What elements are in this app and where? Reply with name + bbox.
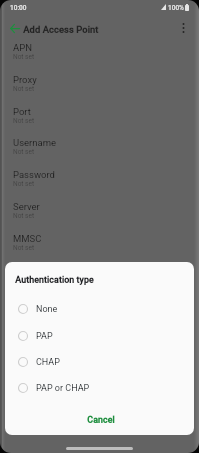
button[interactable]: Port: [0, 102, 199, 133]
staticText: 10:00: [10, 4, 27, 12]
staticText: Username: [13, 137, 57, 148]
button[interactable]: Navigate up: [5, 18, 25, 38]
staticText: Not set: [13, 244, 35, 252]
staticText: Proxy: [13, 74, 37, 85]
button[interactable]: More options: [173, 18, 193, 38]
button[interactable]: MMS proxy: [0, 260, 199, 291]
staticText: Not set: [13, 148, 35, 156]
staticText: Not set: [13, 212, 35, 220]
button[interactable]: MMSC: [0, 229, 199, 260]
button[interactable]: Cancel: [78, 410, 124, 430]
staticText: CHAP: [36, 357, 60, 368]
button[interactable]: Username: [0, 133, 199, 164]
staticText: Server: [13, 201, 40, 212]
staticText: Not set: [13, 275, 35, 283]
staticText: Not set: [13, 117, 35, 125]
button[interactable]: Proxy: [0, 70, 199, 101]
staticText: Authentication type: [15, 275, 94, 286]
staticText: Not set: [13, 85, 35, 93]
staticText: PAP or CHAP: [36, 383, 90, 394]
button[interactable]: PAP or CHAP: [5, 375, 194, 401]
staticText: MMSC: [13, 233, 42, 244]
button[interactable]: Password: [0, 165, 199, 196]
staticText: None: [36, 304, 58, 315]
staticText: 100%: [168, 4, 184, 12]
staticText: Port: [13, 106, 31, 117]
staticText: Cancel: [87, 415, 115, 426]
button[interactable]: None: [5, 296, 194, 322]
staticText: Not set: [13, 180, 35, 188]
button[interactable]: Server: [0, 197, 199, 228]
staticText: APN: [13, 42, 32, 53]
staticText: Password: [13, 169, 55, 180]
button[interactable]: PAP: [5, 323, 194, 349]
staticText: Not set: [13, 53, 35, 61]
button[interactable]: APN: [0, 38, 199, 69]
staticText: Add Access Point: [23, 24, 99, 35]
button[interactable]: CHAP: [5, 349, 194, 375]
staticText: PAP: [36, 331, 53, 342]
